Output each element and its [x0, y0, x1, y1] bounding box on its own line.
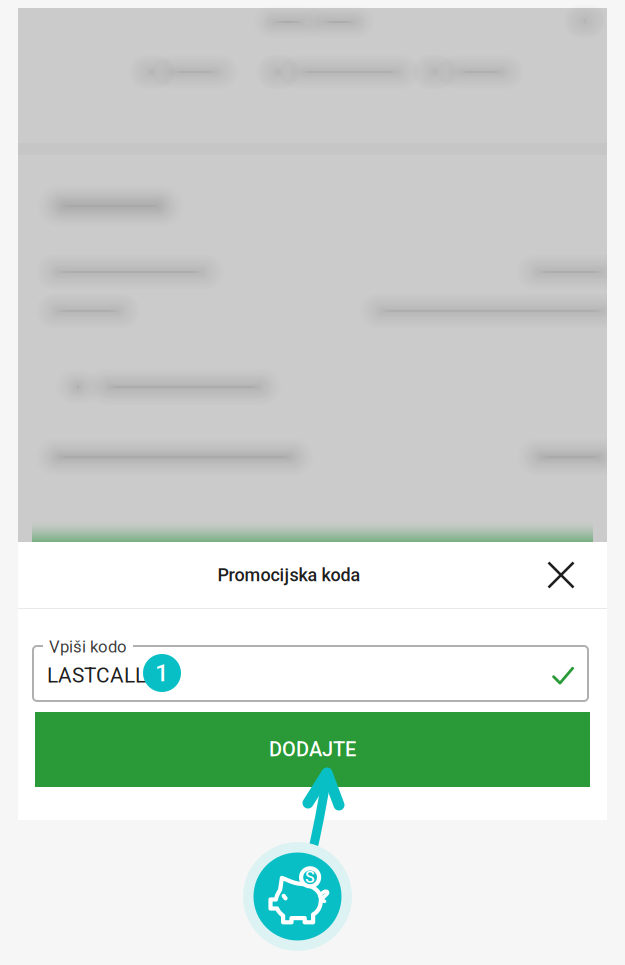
staticText: Vpiši kodo — [49, 637, 127, 656]
staticText: Promocijska koda — [217, 564, 360, 586]
staticText: S — [305, 868, 315, 887]
staticText: DODAJTE — [269, 738, 356, 761]
button[interactable]: DODAJTE — [35, 712, 590, 787]
button[interactable]: Zapri — [528, 542, 594, 608]
staticText: 1 — [155, 659, 169, 687]
staticText: LASTCALL — [47, 663, 146, 688]
